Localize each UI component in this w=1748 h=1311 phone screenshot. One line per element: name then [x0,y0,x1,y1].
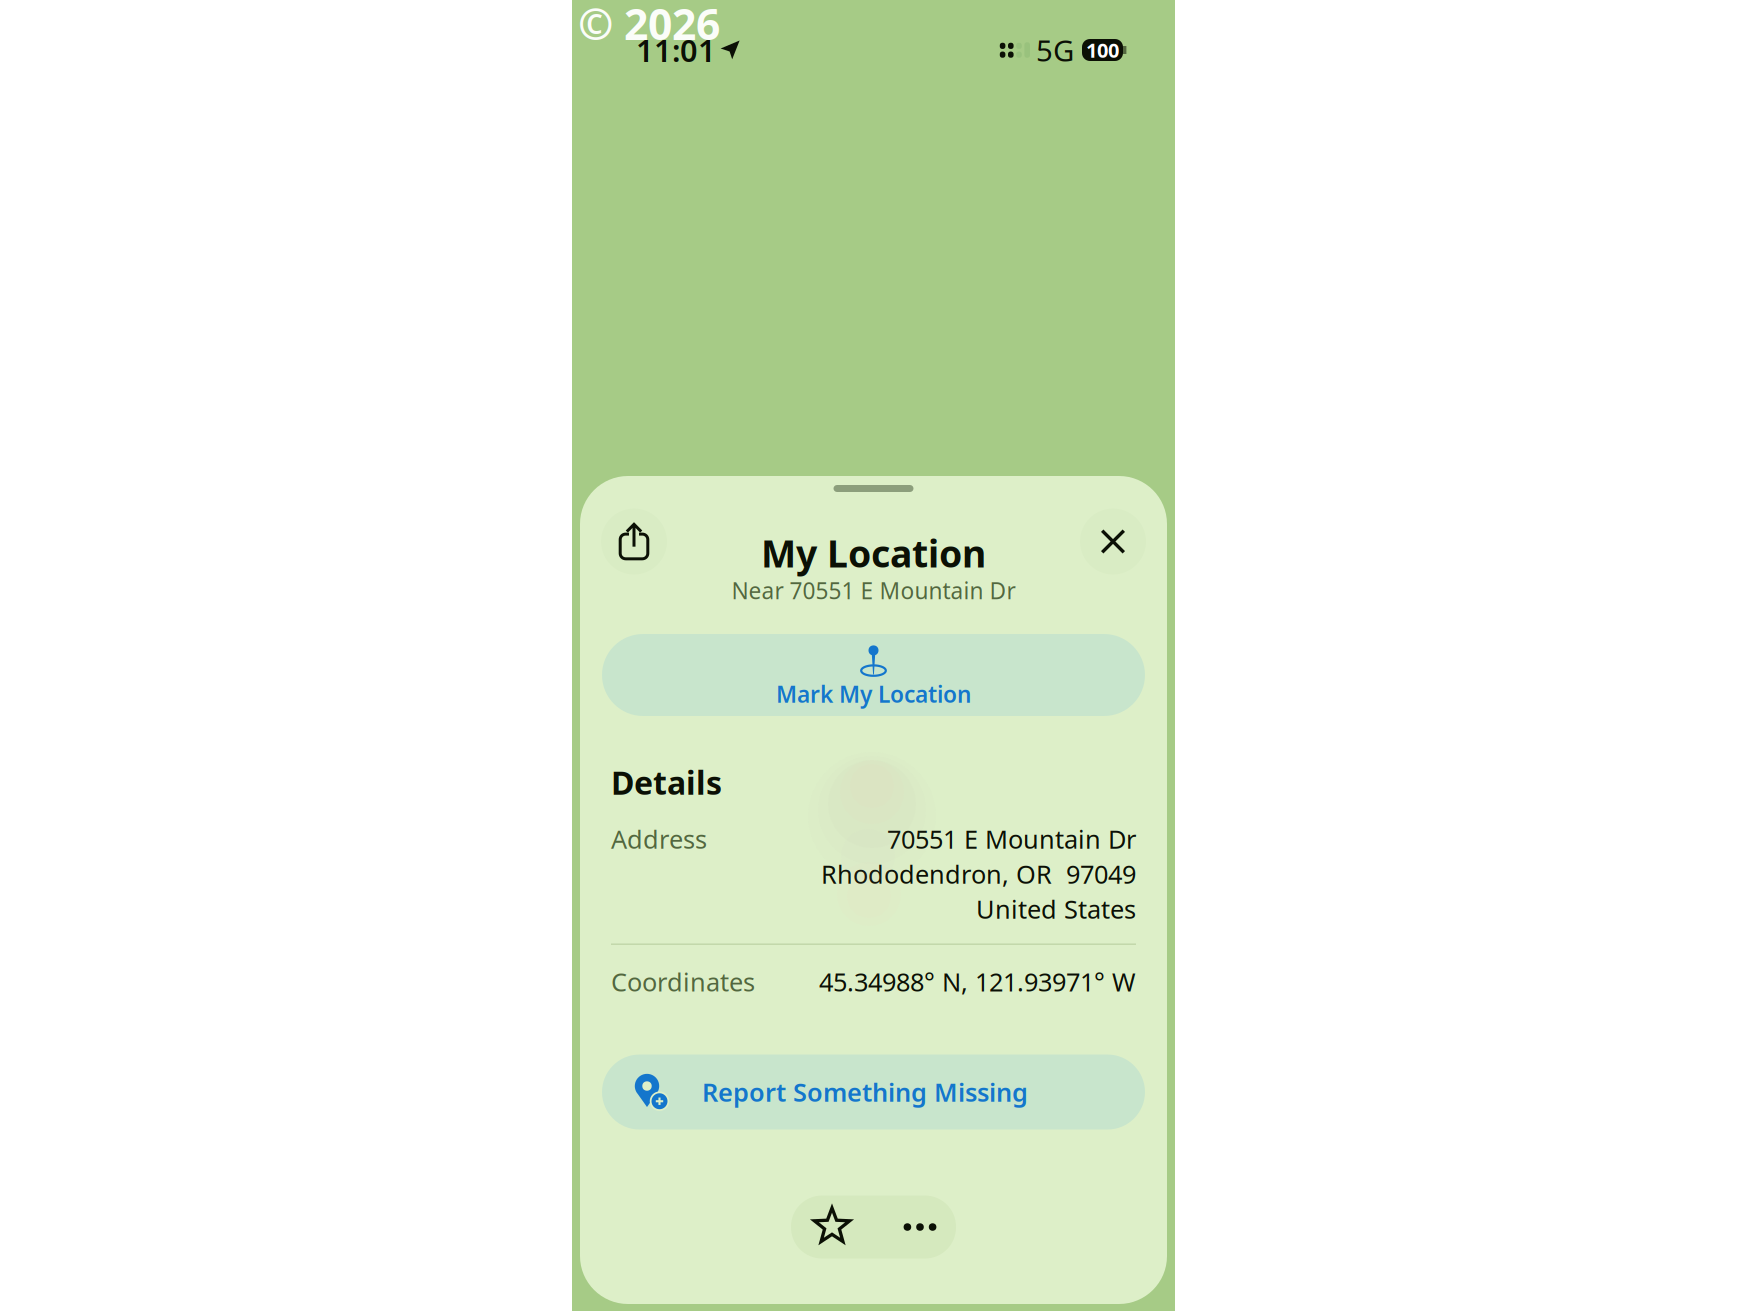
button[interactable]: Close [1080,508,1146,574]
staticText: 11:01 [636,30,716,70]
button[interactable]: Mark My Location [602,634,1145,716]
staticText: Coordinates [611,965,755,998]
staticText: Report Something Missing [702,1075,1028,1109]
staticText: Details [611,761,722,803]
staticText: My Location [761,528,986,578]
button[interactable]: Favorite [791,1195,873,1258]
staticText: Address [611,822,707,856]
staticText: United States [976,892,1136,926]
staticText: © 2026 [578,0,720,52]
button[interactable]: More [873,1195,956,1258]
button[interactable]: Report Something Missing [602,1054,1145,1129]
staticText: 5G [1036,30,1074,69]
staticText: Rhododendron, OR 97049 [821,857,1136,891]
staticText: 100 [1086,37,1119,63]
staticText: 45.34988° N, 121.93971° W [819,965,1136,998]
staticText: Mark My Location [776,679,971,709]
button[interactable]: Share [601,508,667,574]
staticText: 70551 E Mountain Dr [887,822,1136,856]
staticText: Near 70551 E Mountain Dr [731,575,1015,605]
